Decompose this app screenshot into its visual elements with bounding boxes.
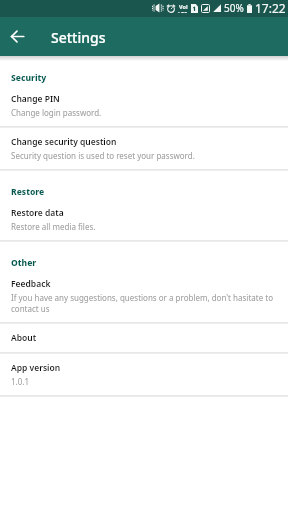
staticText: Change PIN — [11, 93, 60, 105]
staticText: LTE — [178, 10, 188, 13]
staticText: 17:22 — [255, 0, 286, 16]
button[interactable]: About — [0, 323, 288, 352]
staticText: 1.0.1 — [11, 376, 30, 387]
button[interactable]: Change security question — [0, 127, 288, 169]
staticText: Change login password. — [11, 107, 102, 118]
staticText: App version — [11, 362, 61, 374]
button[interactable]: Restore data — [0, 198, 288, 240]
button[interactable]: Change PIN — [0, 84, 288, 126]
staticText: If you have any suggestions, questions o… — [11, 292, 277, 314]
staticText: Restore all media files. — [11, 221, 96, 232]
button[interactable]: Back — [3, 22, 32, 51]
staticText: Security — [11, 72, 47, 84]
staticText: Security question is used to reset your … — [11, 150, 195, 161]
staticText: Feedback — [11, 278, 51, 290]
button[interactable]: Feedback — [0, 269, 288, 322]
staticText: About — [11, 332, 37, 344]
staticText: Restore — [11, 186, 45, 198]
staticText: Restore data — [11, 207, 64, 219]
button[interactable]: App version — [0, 353, 288, 395]
staticText: Vol — [179, 3, 188, 10]
staticText: Settings — [51, 28, 106, 47]
staticText: Other — [11, 257, 37, 269]
staticText: Change security question — [11, 136, 117, 148]
staticText: 50% — [224, 1, 244, 15]
